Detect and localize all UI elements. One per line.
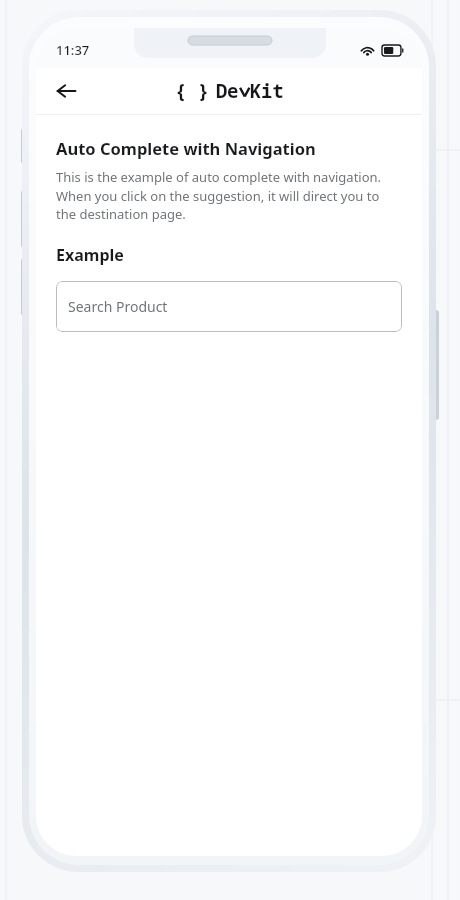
staticText: This is the example of auto complete wit… bbox=[56, 168, 402, 222]
staticText: De bbox=[216, 78, 239, 104]
button[interactable]: Search Product bbox=[56, 281, 402, 332]
staticText: Kit bbox=[250, 78, 284, 104]
staticText: Search Product bbox=[68, 297, 168, 316]
staticText: 11:37 bbox=[56, 41, 90, 59]
button[interactable]: Back bbox=[46, 71, 86, 111]
staticText: Auto Complete with Navigation bbox=[56, 137, 316, 159]
staticText: Example bbox=[56, 244, 124, 266]
staticText: { } bbox=[175, 78, 210, 104]
